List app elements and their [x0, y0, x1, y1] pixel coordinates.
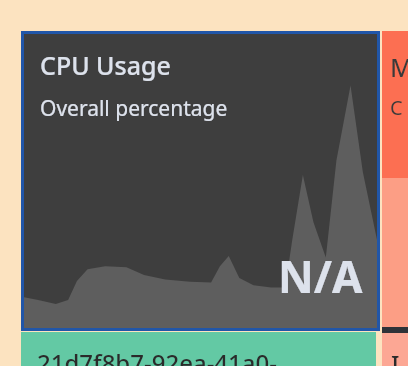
staticText: I — [391, 347, 400, 366]
button[interactable]: CPU Usage — [21, 31, 380, 331]
button[interactable]: 21d7f8b7-92ea-41a0- — [21, 332, 376, 366]
staticText: CPU Usage — [40, 48, 171, 82]
button[interactable]: M — [382, 31, 408, 178]
staticText: M — [390, 50, 408, 84]
staticText: N/A — [278, 246, 363, 306]
staticText: C — [390, 94, 403, 121]
button[interactable]: I — [382, 333, 408, 366]
staticText: Overall percentage — [40, 94, 228, 123]
staticText: 21d7f8b7-92ea-41a0- — [37, 346, 277, 366]
